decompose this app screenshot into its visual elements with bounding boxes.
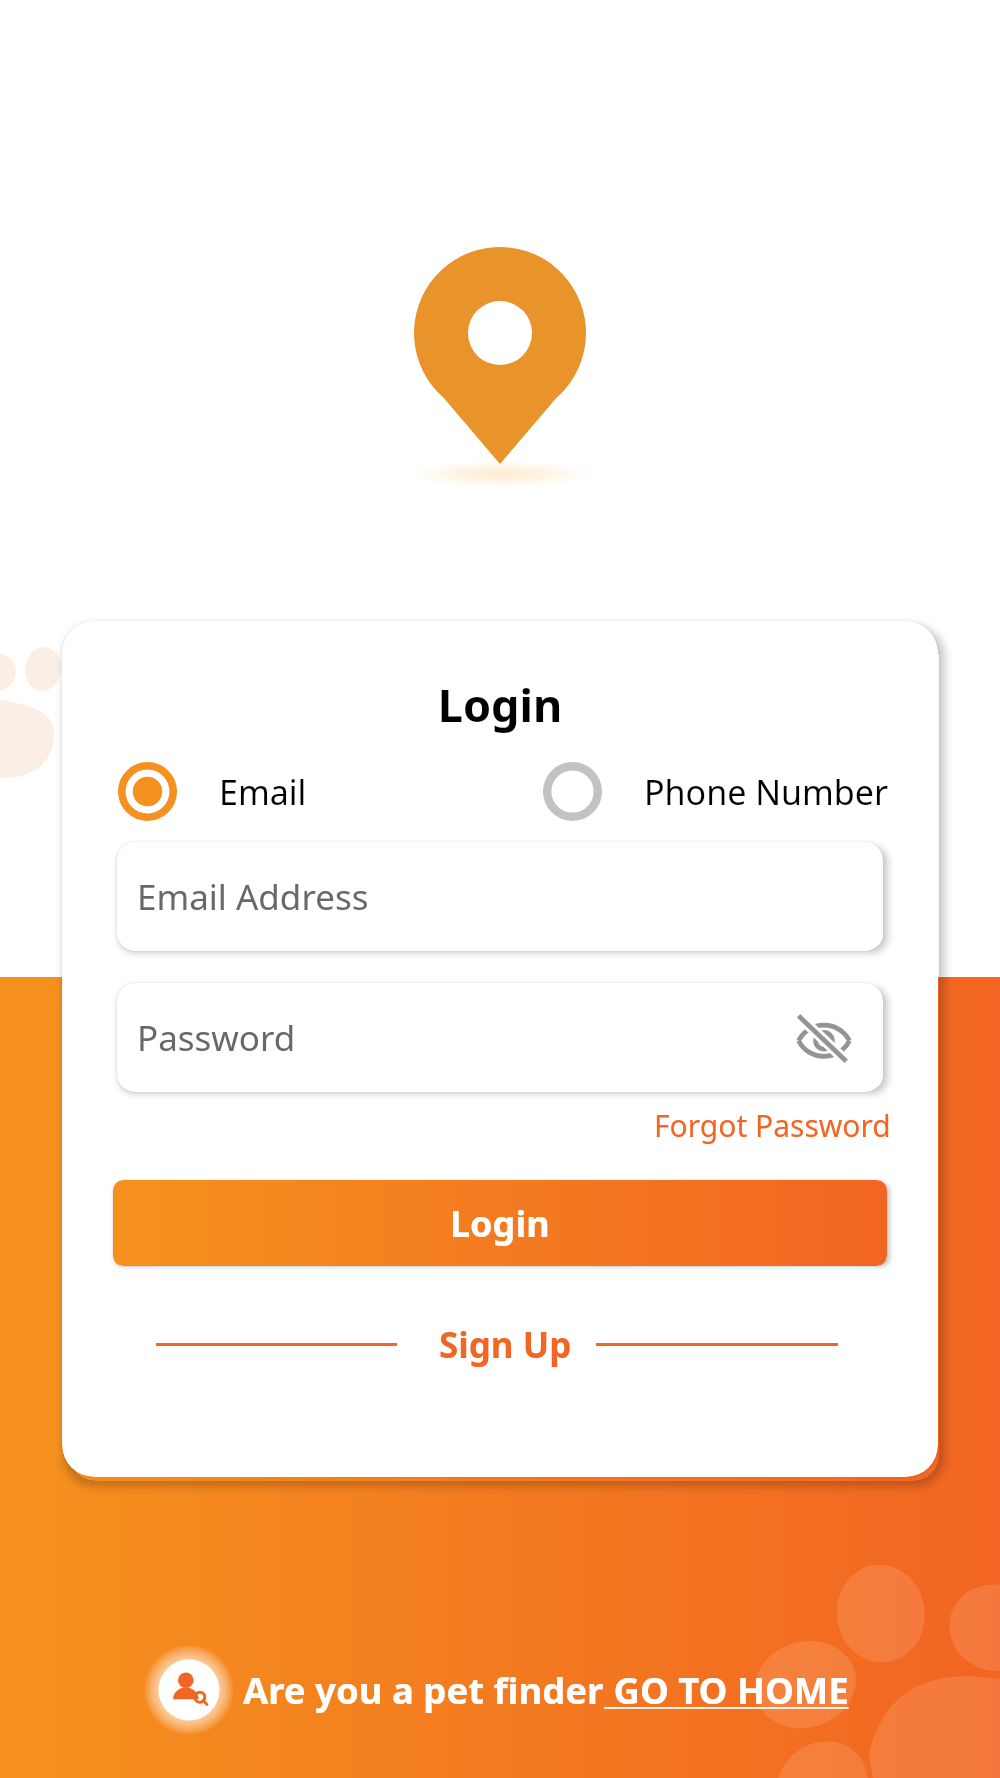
staticText: Password [137,1014,296,1062]
staticText: GO TO HOME [604,1665,849,1715]
staticText: Phone Number [644,769,888,815]
button[interactable]: Pet finder profile [146,1647,849,1733]
button[interactable]: Email Address [117,842,883,951]
button[interactable]: Sign Up [439,1321,572,1369]
button[interactable]: Show password [795,1009,853,1067]
button[interactable]: Email [118,762,307,821]
staticText: Email Address [137,873,369,921]
other: Pet finder profile [146,1647,232,1733]
button[interactable]: Forgot Password [654,1105,891,1146]
button[interactable]: Phone Number [543,762,888,821]
staticText: Email [219,769,307,815]
button[interactable]: Login [113,1180,887,1266]
button[interactable]: Password [117,983,883,1092]
staticText: Are you a pet finder [243,1665,604,1715]
staticText: Login [450,1199,550,1248]
staticText: Login [62,674,938,735]
